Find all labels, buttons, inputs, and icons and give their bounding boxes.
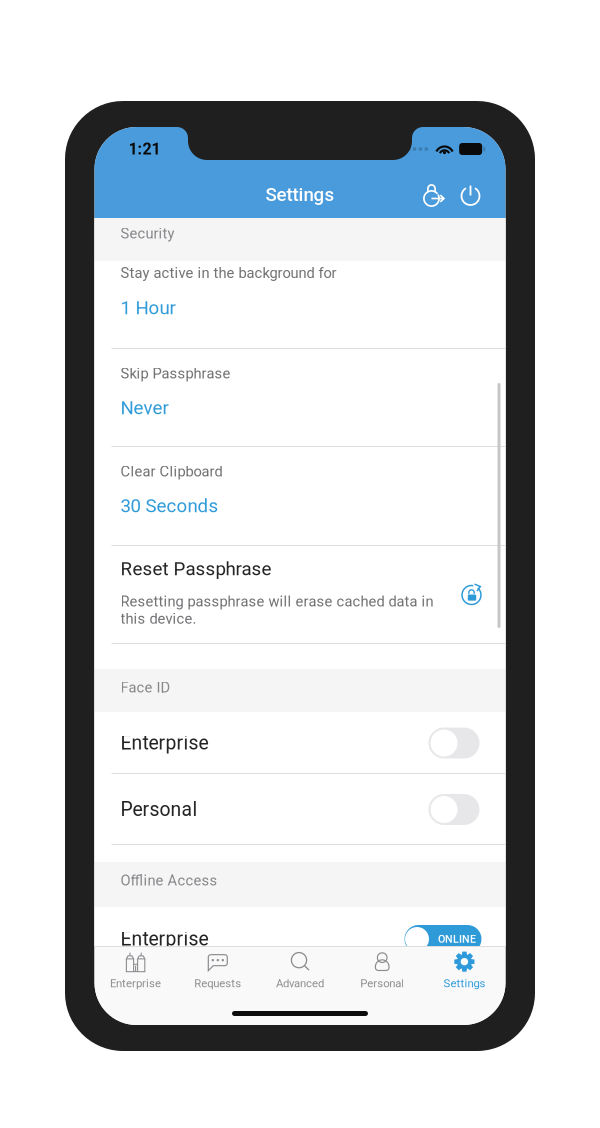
button[interactable]: Enterprise xyxy=(94,907,505,971)
staticText: Clear Clipboard xyxy=(120,463,222,480)
staticText: Skip Passphrase xyxy=(120,365,230,382)
staticText: ONLINE xyxy=(438,933,476,945)
staticText: 1 Hour xyxy=(120,297,175,319)
button[interactable]: Enterprise xyxy=(94,712,505,774)
staticText: Personal xyxy=(120,798,197,821)
staticText: Settings xyxy=(443,977,485,990)
button[interactable]: Stay active in the background for xyxy=(94,261,505,349)
button[interactable]: Clear Clipboard xyxy=(94,447,505,546)
staticText: Resetting passphrase will erase cached d… xyxy=(120,593,433,627)
staticText: Security xyxy=(120,225,174,242)
button[interactable]: Sign out xyxy=(455,179,485,209)
button[interactable]: Reset Passphrase xyxy=(94,546,505,644)
staticText: Advanced xyxy=(276,977,324,990)
button[interactable]: Personal xyxy=(94,774,505,845)
staticText: Reset Passphrase xyxy=(120,558,271,580)
button[interactable]: Requests xyxy=(177,947,259,997)
staticText: Enterprise xyxy=(120,928,208,950)
button[interactable]: Skip Passphrase xyxy=(94,349,505,447)
staticText: Enterprise xyxy=(110,977,161,990)
staticText: Enterprise xyxy=(120,732,208,754)
button[interactable]: Personal xyxy=(341,947,423,997)
button[interactable]: Settings xyxy=(423,947,505,997)
staticText: Never xyxy=(120,397,168,419)
button[interactable]: Lock session xyxy=(420,179,450,209)
button[interactable]: Advanced xyxy=(259,947,341,997)
staticText: Face ID xyxy=(120,679,170,696)
staticText: Offline Access xyxy=(120,872,217,889)
staticText: 30 Seconds xyxy=(120,495,218,517)
button[interactable]: Enterprise xyxy=(94,947,177,997)
staticText: Personal xyxy=(360,977,404,990)
staticText: Settings xyxy=(265,184,334,205)
staticText: Stay active in the background for xyxy=(120,264,336,282)
staticText: 1:21 xyxy=(128,140,160,158)
staticText: Requests xyxy=(194,977,241,990)
